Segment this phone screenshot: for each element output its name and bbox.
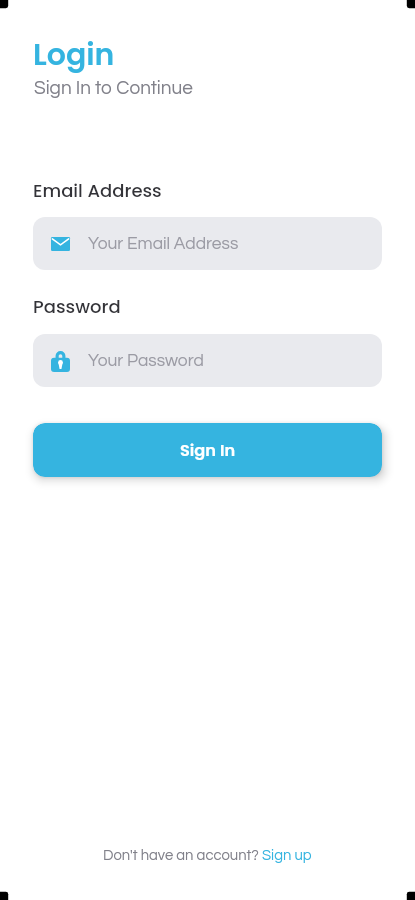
- staticText: Login: [33, 34, 115, 76]
- staticText: Your Email Address: [88, 235, 239, 253]
- other: Password: [51, 350, 70, 372]
- staticText: Your Password: [88, 352, 204, 370]
- staticText: Sign In: [180, 439, 236, 462]
- staticText: Email Address: [33, 178, 162, 203]
- button[interactable]: Email Address text field: [33, 217, 382, 270]
- staticText: Sign In to Continue: [34, 78, 193, 98]
- other: Email: [51, 237, 70, 251]
- button[interactable]: Sign up: [262, 848, 312, 863]
- staticText: Password: [33, 294, 121, 319]
- button[interactable]: Sign In: [33, 423, 382, 477]
- button[interactable]: Password text field: [33, 334, 382, 387]
- staticText: Don't have an account?: [103, 848, 262, 863]
- staticText: Sign up: [262, 848, 312, 863]
